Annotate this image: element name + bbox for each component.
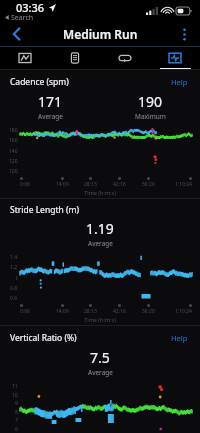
- staticText: Medium Run: [63, 26, 138, 42]
- staticText: 14:09: [56, 308, 69, 315]
- button[interactable]: Map: [0, 47, 50, 68]
- staticText: 140: [9, 148, 18, 155]
- staticText: 1.2: [10, 264, 18, 271]
- staticText: Average: [88, 368, 113, 377]
- staticText: 10: [12, 392, 18, 399]
- button[interactable]: Help: [169, 331, 190, 345]
- staticText: 1: [15, 275, 18, 282]
- staticText: 28:13: [84, 308, 97, 315]
- staticText: Time (h:m:s): [0, 316, 200, 323]
- staticText: 190: [138, 92, 163, 111]
- staticText: 8: [15, 409, 18, 416]
- staticText: 0.8: [10, 285, 18, 292]
- staticText: Average: [38, 112, 63, 121]
- staticText: 7: [15, 417, 18, 424]
- staticText: Maximum: [135, 112, 166, 121]
- button[interactable]: Help: [169, 75, 190, 89]
- staticText: 11: [12, 383, 18, 390]
- staticText: 160: [9, 137, 18, 144]
- staticText: Help: [171, 333, 188, 343]
- staticText: 0:06: [20, 181, 30, 188]
- staticText: 6: [15, 426, 18, 433]
- staticText: 42:16: [113, 181, 126, 188]
- staticText: 28:13: [84, 181, 97, 188]
- staticText: 9: [15, 400, 18, 407]
- staticText: 7.5: [90, 348, 110, 367]
- staticText: 03:36: [16, 0, 45, 15]
- button[interactable]: Metrics: [150, 47, 200, 68]
- button[interactable]: Details: [50, 47, 100, 68]
- staticText: Search: [11, 13, 34, 22]
- staticText: 1:10:24: [175, 181, 192, 188]
- staticText: 0.6: [10, 295, 18, 302]
- staticText: 1.19: [86, 219, 114, 238]
- staticText: Help: [171, 77, 188, 87]
- staticText: 120: [9, 158, 18, 165]
- staticText: 100: [9, 168, 18, 175]
- staticText: 180: [9, 127, 18, 134]
- button[interactable]: More options: [172, 22, 196, 46]
- staticText: 1.4: [10, 254, 18, 261]
- staticText: 14:09: [56, 181, 69, 188]
- staticText: 0:06: [20, 308, 30, 315]
- staticText: Time (h:m:s): [0, 189, 200, 196]
- button[interactable]: Back: [4, 22, 30, 46]
- staticText: 1:10:24: [175, 308, 192, 315]
- staticText: 171: [38, 92, 63, 111]
- staticText: 56:20: [142, 308, 155, 315]
- staticText: 56:20: [142, 181, 155, 188]
- staticText: Cadence (spm): [10, 76, 69, 88]
- button[interactable]: Laps: [100, 47, 150, 68]
- staticText: Stride Length (m): [10, 204, 79, 216]
- staticText: Average: [88, 239, 113, 248]
- staticText: 42:16: [113, 308, 126, 315]
- staticText: Vertical Ratio (%): [10, 332, 77, 344]
